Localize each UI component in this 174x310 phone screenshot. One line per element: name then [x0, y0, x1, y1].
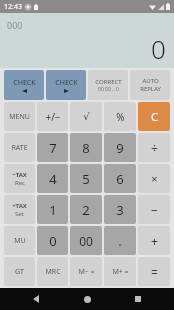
- button[interactable]: CHECK: [46, 70, 86, 100]
- staticText: 2: [82, 201, 90, 219]
- staticText: MRC: [45, 267, 61, 277]
- staticText: C: [151, 109, 158, 124]
- button[interactable]: CORRECT: [88, 70, 128, 100]
- button[interactable]: 6: [104, 164, 136, 193]
- button[interactable]: MRC: [37, 257, 68, 286]
- staticText: ÷: [151, 140, 158, 156]
- button[interactable]: 1: [37, 195, 68, 224]
- button[interactable]: AUTO: [130, 70, 170, 100]
- staticText: .: [118, 232, 122, 250]
- staticText: 0: [49, 232, 57, 250]
- button[interactable]: −TAX: [4, 164, 35, 193]
- staticText: CHECK: [55, 78, 78, 88]
- staticText: MENU: [9, 112, 30, 122]
- staticText: REPLAY: [140, 85, 161, 93]
- staticText: −: [151, 202, 158, 218]
- button[interactable]: 5: [70, 164, 102, 193]
- button[interactable]: MU: [4, 226, 35, 255]
- staticText: M+ =: [112, 267, 129, 277]
- staticText: 9: [116, 139, 124, 157]
- staticText: 4: [49, 170, 57, 188]
- button[interactable]: Clear: [138, 102, 170, 131]
- staticText: 7: [49, 139, 57, 157]
- button[interactable]: .: [104, 226, 136, 255]
- button[interactable]: Back: [21, 288, 51, 310]
- staticText: 8: [82, 139, 90, 157]
- button[interactable]: ÷: [138, 133, 170, 162]
- button[interactable]: RATE: [4, 133, 35, 162]
- button[interactable]: 8: [70, 133, 102, 162]
- staticText: ×: [151, 171, 158, 186]
- button[interactable]: 2: [70, 195, 102, 224]
- button[interactable]: M+ =: [104, 257, 136, 286]
- button[interactable]: −: [138, 195, 170, 224]
- staticText: Rec: [15, 179, 25, 187]
- button[interactable]: ×: [138, 164, 170, 193]
- staticText: −TAX: [12, 171, 27, 179]
- button[interactable]: +: [138, 226, 170, 255]
- button[interactable]: 9: [104, 133, 136, 162]
- button[interactable]: CHECK: [4, 70, 44, 100]
- staticText: Set: [15, 210, 24, 218]
- button[interactable]: Recents: [123, 288, 153, 310]
- staticText: +TAX: [12, 202, 27, 210]
- staticText: +/−: [45, 110, 61, 124]
- staticText: 00: [79, 233, 93, 249]
- staticText: 1: [49, 201, 57, 219]
- button[interactable]: MENU: [4, 102, 35, 131]
- staticText: CORRECT: [95, 78, 122, 86]
- staticText: 00 00 .. 0: [98, 86, 119, 93]
- button[interactable]: √: [70, 102, 102, 131]
- staticText: +: [151, 233, 158, 249]
- button[interactable]: M− =: [70, 257, 102, 286]
- button[interactable]: 4: [37, 164, 68, 193]
- staticText: 000: [7, 19, 23, 31]
- staticText: RATE: [11, 143, 28, 153]
- staticText: =: [151, 264, 158, 280]
- staticText: GT: [15, 267, 24, 277]
- button[interactable]: %: [104, 102, 136, 131]
- button[interactable]: +/−: [37, 102, 68, 131]
- button[interactable]: 7: [37, 133, 68, 162]
- staticText: 3: [116, 201, 124, 219]
- button[interactable]: 00: [70, 226, 102, 255]
- button[interactable]: Home: [72, 288, 102, 310]
- staticText: CHECK: [13, 78, 36, 88]
- staticText: MU: [14, 236, 26, 246]
- staticText: 0: [151, 31, 166, 66]
- button[interactable]: 3: [104, 195, 136, 224]
- staticText: %: [116, 110, 125, 124]
- staticText: 5: [82, 170, 90, 188]
- button[interactable]: +TAX: [4, 195, 35, 224]
- button[interactable]: =: [138, 257, 170, 286]
- staticText: AUTO: [142, 77, 159, 85]
- staticText: 6: [116, 170, 124, 188]
- staticText: 12:43: [4, 2, 22, 12]
- button[interactable]: GT: [4, 257, 35, 286]
- button[interactable]: 0: [37, 226, 68, 255]
- staticText: √: [83, 111, 90, 123]
- staticText: M− =: [78, 267, 95, 277]
